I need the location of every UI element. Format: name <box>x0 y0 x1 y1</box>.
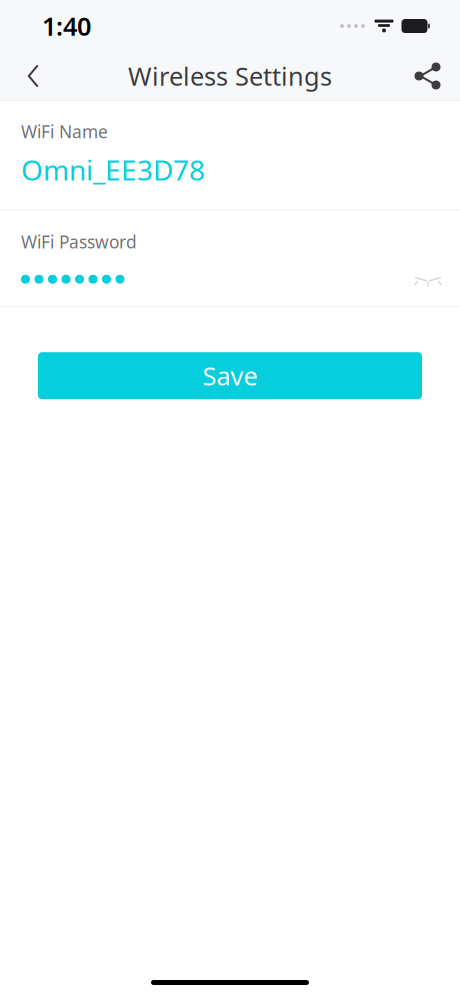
staticText: Wireless Settings <box>128 59 332 93</box>
staticText: WiFi Name <box>21 120 108 143</box>
staticText: Omni_EE3D78 <box>21 151 205 188</box>
button[interactable]: Share <box>402 52 454 100</box>
staticText: Save <box>202 359 257 392</box>
button[interactable]: Back <box>8 52 58 100</box>
staticText: 1:40 <box>42 9 91 43</box>
button[interactable]: Show password <box>406 264 450 294</box>
staticText: WiFi Password <box>21 230 137 253</box>
button[interactable]: Save <box>38 352 422 399</box>
